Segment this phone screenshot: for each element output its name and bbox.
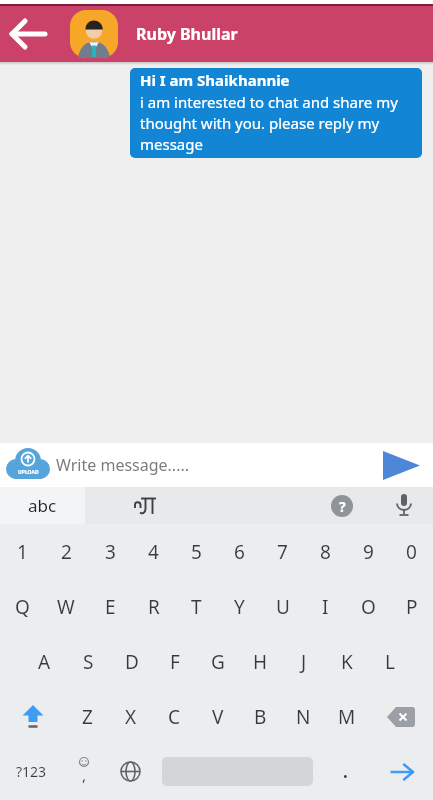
staticText: 3: [105, 539, 116, 565]
staticText: .: [343, 760, 348, 783]
staticText: 0: [406, 539, 417, 565]
staticText: 1: [17, 539, 28, 565]
button[interactable]: ?123: [0, 744, 62, 799]
button[interactable]: abc: [0, 487, 85, 524]
button[interactable]: [70, 10, 118, 58]
staticText: U: [276, 594, 290, 620]
button[interactable]: C: [153, 689, 196, 744]
staticText: J: [301, 649, 307, 675]
staticText: 8: [320, 539, 331, 565]
button[interactable]: U: [261, 579, 304, 634]
staticText: I: [322, 594, 329, 620]
staticText: D: [125, 649, 139, 675]
button[interactable]: V: [196, 689, 239, 744]
staticText: 5: [191, 539, 202, 565]
staticText: O: [361, 594, 376, 620]
button[interactable]: X: [109, 689, 153, 744]
staticText: abc: [28, 494, 57, 517]
button[interactable]: ,: [62, 744, 105, 799]
button[interactable]: Z: [65, 689, 109, 744]
button[interactable]: K: [325, 634, 368, 689]
staticText: ?123: [16, 762, 47, 781]
staticText: X: [125, 704, 137, 730]
staticText: 7: [277, 539, 288, 565]
button[interactable]: .: [320, 744, 370, 799]
button[interactable]: I: [304, 579, 347, 634]
button[interactable]: 1: [0, 524, 44, 579]
button[interactable]: 3: [88, 524, 132, 579]
staticText: M: [338, 704, 356, 730]
button[interactable]: J: [282, 634, 325, 689]
staticText: ,: [82, 765, 87, 785]
button[interactable]: [105, 744, 155, 799]
button[interactable]: UPLOAD: [0, 443, 56, 487]
button[interactable]: H: [239, 634, 282, 689]
button[interactable]: ?: [331, 495, 353, 517]
button[interactable]: S: [66, 634, 110, 689]
staticText: ?: [339, 497, 346, 516]
staticText: P: [406, 594, 418, 620]
button[interactable]: W: [44, 579, 88, 634]
button[interactable]: [0, 6, 56, 62]
staticText: Ruby Bhullar: [136, 23, 238, 45]
button[interactable]: L: [368, 634, 411, 689]
staticText: UPLOAD: [18, 469, 39, 476]
button[interactable]: 6: [218, 524, 261, 579]
button[interactable]: N: [282, 689, 325, 744]
button[interactable]: F: [153, 634, 196, 689]
button[interactable]: Y: [218, 579, 261, 634]
staticText: R: [148, 594, 160, 620]
button[interactable]: [395, 493, 413, 519]
staticText: Y: [234, 594, 245, 620]
button[interactable]: D: [110, 634, 153, 689]
button[interactable]: 5: [175, 524, 218, 579]
button[interactable]: 2: [44, 524, 88, 579]
button[interactable]: 0: [390, 524, 433, 579]
staticText: Hi I am Shaikhannie i am interested to c…: [140, 70, 416, 154]
button[interactable]: 7: [261, 524, 304, 579]
staticText: 2: [61, 539, 72, 565]
staticText: F: [170, 649, 180, 675]
staticText: T: [191, 594, 202, 620]
staticText: L: [385, 649, 395, 675]
staticText: S: [83, 649, 94, 675]
button[interactable]: [133, 495, 157, 517]
button[interactable]: P: [390, 579, 433, 634]
button[interactable]: Q: [0, 579, 44, 634]
button[interactable]: [0, 689, 65, 744]
staticText: G: [211, 649, 225, 675]
staticText: 6: [234, 539, 245, 565]
button[interactable]: 4: [132, 524, 175, 579]
staticText: C: [168, 704, 181, 730]
button[interactable]: E: [88, 579, 132, 634]
staticText: N: [296, 704, 311, 730]
staticText: B: [254, 704, 267, 730]
button[interactable]: [370, 744, 433, 799]
button[interactable]: B: [239, 689, 282, 744]
staticText: Z: [82, 704, 93, 730]
button[interactable]: A: [22, 634, 66, 689]
staticText: E: [105, 594, 116, 620]
staticText: 4: [148, 539, 159, 565]
staticText: Q: [15, 594, 30, 620]
button[interactable]: [375, 443, 427, 487]
button[interactable]: G: [196, 634, 239, 689]
staticText: 9: [363, 539, 374, 565]
staticText: W: [57, 594, 75, 620]
staticText: A: [38, 649, 51, 675]
button[interactable]: 9: [347, 524, 390, 579]
button[interactable]: R: [132, 579, 175, 634]
button[interactable]: M: [325, 689, 368, 744]
button[interactable]: [368, 689, 433, 744]
button[interactable]: [162, 744, 313, 799]
staticText: K: [341, 649, 353, 675]
button[interactable]: 8: [304, 524, 347, 579]
staticText: V: [212, 704, 224, 730]
staticText: Write message.....: [56, 454, 375, 476]
button[interactable]: O: [347, 579, 390, 634]
staticText: H: [253, 649, 268, 675]
button[interactable]: T: [175, 579, 218, 634]
